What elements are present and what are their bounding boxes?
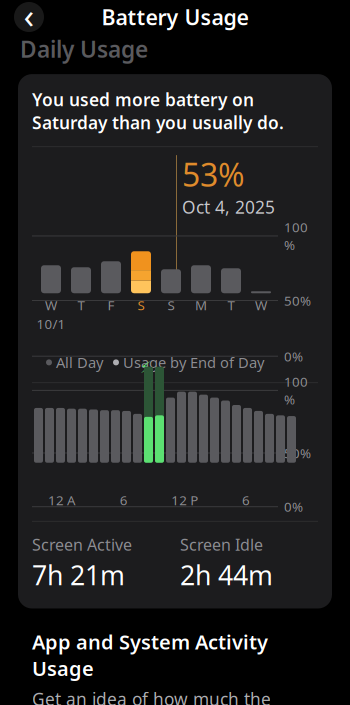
staticText: S	[137, 296, 144, 314]
staticText: T	[77, 296, 84, 314]
staticText: M	[195, 296, 207, 314]
staticText: 6	[120, 491, 128, 509]
staticText: S	[167, 296, 174, 314]
staticText: T	[227, 296, 234, 314]
staticText: W	[255, 296, 267, 314]
staticText: F	[107, 296, 114, 314]
staticText: All Day	[56, 353, 103, 372]
staticText: App and System Activity Usage	[32, 628, 268, 682]
staticText: 100%	[284, 218, 308, 254]
staticText: Usage by End of Day	[123, 353, 264, 372]
staticText: 0%	[284, 347, 303, 365]
staticText: Screen Active	[32, 534, 132, 555]
staticText: 10/1	[36, 315, 65, 333]
staticText: Daily Usage	[20, 34, 148, 64]
staticText: 50%	[284, 292, 311, 309]
staticText: 12 A	[48, 491, 76, 509]
staticText: Oct 4, 2025	[182, 196, 275, 219]
staticText: 12 P	[171, 491, 198, 509]
staticText: 53%	[182, 153, 245, 196]
staticText: 0%	[284, 498, 303, 515]
staticText: ⚡︎	[140, 359, 151, 377]
staticText: 2h 44m	[180, 557, 273, 592]
staticText: W	[45, 296, 57, 314]
staticText: 50%	[284, 444, 311, 462]
staticText: ‹	[23, 0, 34, 38]
staticText: Battery Usage	[101, 3, 248, 31]
staticText: Get an idea of how much the battery is u…	[32, 688, 313, 705]
staticText: 7h 21m	[32, 557, 125, 592]
staticText: Screen Idle	[180, 534, 263, 555]
staticText: 6	[242, 491, 250, 509]
staticText: You used more battery on Saturday than y…	[32, 88, 284, 134]
button[interactable]: Back	[12, 0, 46, 34]
staticText: 100%	[284, 373, 308, 408]
